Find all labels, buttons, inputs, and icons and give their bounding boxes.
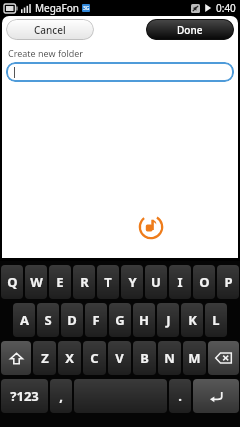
staticText: Done [177, 23, 203, 37]
button[interactable]: B [133, 341, 156, 375]
button[interactable]: Done [146, 19, 234, 40]
button[interactable]: O [193, 265, 215, 299]
staticText: B [140, 349, 149, 367]
staticText: X [65, 349, 74, 367]
staticText: L [212, 311, 220, 329]
button[interactable]: Backspace [208, 341, 239, 375]
staticText: T [104, 273, 112, 291]
button[interactable]: Shift [1, 341, 31, 375]
staticText: U [151, 273, 161, 291]
staticText: C [90, 349, 99, 367]
staticText: 0:40 [216, 1, 236, 15]
button[interactable]: T [97, 265, 119, 299]
button[interactable]: V [108, 341, 131, 375]
button[interactable]: Y [121, 265, 143, 299]
staticText: I [177, 273, 183, 291]
staticText: W [30, 273, 43, 291]
button[interactable]: P [217, 265, 239, 299]
button[interactable]: J [157, 303, 179, 337]
staticText: Y [128, 273, 137, 291]
staticText: . [178, 387, 182, 405]
staticText: F [92, 311, 100, 329]
button[interactable]: W [25, 265, 47, 299]
staticText: K [188, 311, 197, 329]
button[interactable]: M [183, 341, 206, 375]
staticText: G [115, 311, 125, 329]
button[interactable]: Q [1, 265, 23, 299]
staticText: O [199, 273, 210, 291]
button[interactable]: S [37, 303, 59, 337]
staticText: ?123 [10, 387, 39, 405]
staticText: D [67, 311, 77, 329]
button[interactable]: L [205, 303, 227, 337]
staticText: P [224, 273, 233, 291]
button[interactable]: I [169, 265, 191, 299]
button[interactable]: E [49, 265, 71, 299]
button[interactable]: R [73, 265, 95, 299]
staticText: N [164, 349, 175, 367]
button[interactable]: Cancel [6, 19, 94, 40]
button[interactable]: A [13, 303, 35, 337]
button[interactable]: Enter [193, 379, 239, 413]
button[interactable]: U [145, 265, 167, 299]
staticText: M [188, 349, 201, 367]
staticText: Z [41, 349, 49, 367]
button[interactable]: Z [33, 341, 56, 375]
button[interactable]: ?123 [1, 379, 48, 413]
staticText: Create new folder [8, 47, 84, 59]
staticText: A [20, 311, 29, 329]
staticText: H [139, 311, 149, 329]
staticText: V [115, 349, 124, 367]
button[interactable]: Space [74, 379, 167, 413]
staticText: MegaFon [35, 1, 79, 15]
button[interactable]: H [133, 303, 155, 337]
button[interactable]: C [83, 341, 106, 375]
button[interactable]: G [109, 303, 131, 337]
staticText: E [56, 273, 64, 291]
staticText: R [80, 273, 89, 291]
staticText: 3G [83, 5, 90, 12]
button[interactable]: K [181, 303, 203, 337]
staticText: J [166, 311, 171, 329]
staticText: Cancel [34, 23, 66, 37]
button[interactable]: D [61, 303, 83, 337]
button[interactable]: X [58, 341, 81, 375]
staticText: , [59, 387, 63, 405]
button[interactable]: , [50, 379, 72, 413]
button[interactable] [6, 62, 234, 82]
staticText: S [44, 311, 52, 329]
button[interactable]: F [85, 303, 107, 337]
button[interactable]: N [158, 341, 181, 375]
button[interactable]: . [169, 379, 191, 413]
staticText: Q [7, 273, 18, 291]
